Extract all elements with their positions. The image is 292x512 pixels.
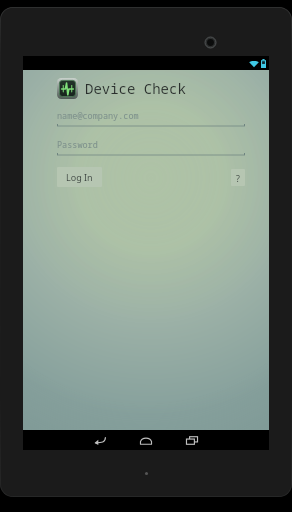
button[interactable]: Help (231, 169, 245, 186)
staticText: Device Check (85, 79, 186, 98)
button[interactable]: Password (57, 139, 245, 156)
staticText: ? (236, 172, 240, 184)
button[interactable]: Home (133, 430, 159, 450)
staticText: Log In (66, 171, 93, 183)
button[interactable]: Log In (57, 167, 102, 187)
staticText: Password (57, 139, 98, 151)
button[interactable]: Recent apps (179, 430, 205, 450)
button[interactable]: Back (87, 430, 113, 450)
button[interactable]: name@company.com (57, 110, 245, 127)
staticText: name@company.com (57, 110, 139, 122)
